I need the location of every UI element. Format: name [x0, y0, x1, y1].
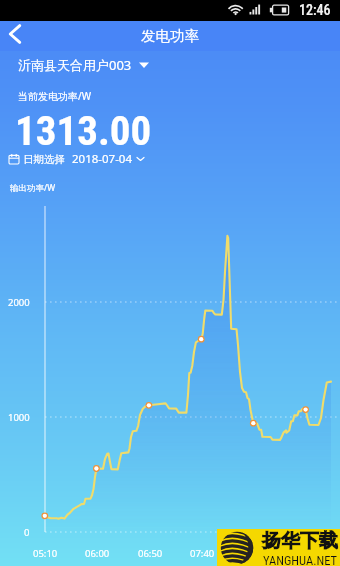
- staticText: 0: [24, 526, 30, 538]
- staticText: 1313.00: [15, 107, 152, 155]
- staticText: 扬华下载: [262, 529, 338, 553]
- staticText: 06:50: [138, 547, 163, 559]
- staticText: 06:00: [85, 547, 110, 559]
- staticText: 05:10: [33, 547, 58, 559]
- staticText: 输出功率/W: [10, 182, 56, 194]
- staticText: 当前发电功率/W: [18, 89, 92, 103]
- staticText: 07:40: [190, 547, 215, 559]
- staticText: 2018-07-04: [72, 151, 133, 167]
- staticText: 发电功率: [141, 27, 199, 45]
- button[interactable]: Back: [0, 21, 31, 51]
- button[interactable]: 日期选择: [5, 149, 148, 169]
- staticText: 1000: [8, 411, 30, 423]
- staticText: 12:46: [299, 2, 331, 18]
- button[interactable]: 沂南县天合用户003: [14, 53, 153, 77]
- staticText: 沂南县天合用户003: [18, 56, 132, 74]
- staticText: 日期选择: [23, 153, 65, 166]
- staticText: YANGHUA.NET: [263, 553, 338, 566]
- staticText: 2000: [8, 296, 30, 308]
